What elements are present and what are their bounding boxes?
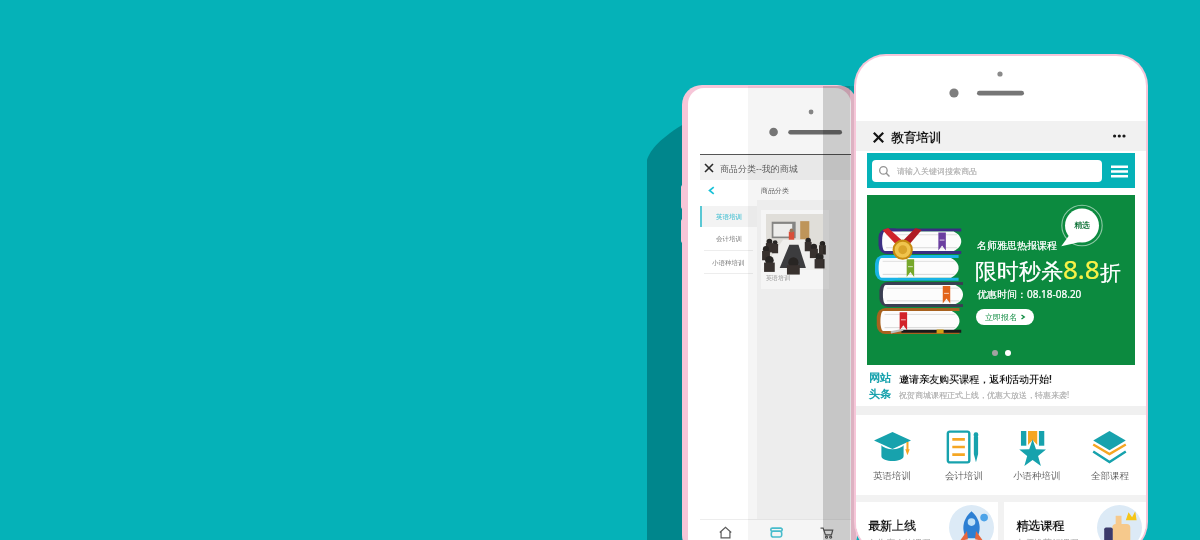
staticText: 名师推荐好课程 xyxy=(1016,537,1079,540)
staticText: 头条 xyxy=(869,387,891,401)
button[interactable]: 会计培训 xyxy=(928,415,1000,495)
staticText: 小语种培训 xyxy=(1013,470,1061,482)
staticText: 邀请亲友购买课程，返利活动开始! xyxy=(899,372,1052,386)
button[interactable]: 英语培训 xyxy=(700,206,757,227)
staticText: 英语培训 xyxy=(873,470,911,482)
staticText: 全部课程 xyxy=(1091,470,1129,482)
button[interactable]: 商品分类--我的商城 xyxy=(705,155,851,180)
button[interactable]: 网站 xyxy=(869,365,1146,406)
button[interactable]: 最新上线 xyxy=(868,502,998,540)
staticText: 名师雅思热报课程 xyxy=(977,239,1057,252)
staticText: 最新上线 xyxy=(868,518,916,533)
staticText: 8.8 xyxy=(1063,251,1100,286)
staticText: 精选 xyxy=(1074,220,1090,230)
staticText: 限时秒杀 xyxy=(975,258,1063,286)
button[interactable]: 购物车 xyxy=(801,520,851,540)
button[interactable]: 英语培训 xyxy=(856,415,928,495)
staticText: 有你喜欢的课程 xyxy=(868,537,931,540)
button[interactable]: 精选课程 xyxy=(1016,502,1146,540)
staticText: 小语种培训 xyxy=(712,259,745,267)
button[interactable]: 首页 xyxy=(700,520,751,540)
button[interactable]: Menu xyxy=(1110,161,1128,181)
staticText: 优惠时间：08.18-08.20 xyxy=(977,287,1082,301)
staticText: 会计培训 xyxy=(945,470,983,482)
button[interactable]: 请输入关键词搜索商品 xyxy=(879,160,1102,182)
staticText: 折 xyxy=(1100,260,1121,286)
staticText: 英语培训 xyxy=(766,274,790,282)
staticText: 商品分类--我的商城 xyxy=(720,162,798,174)
button[interactable]: 会计培训 xyxy=(700,227,757,251)
button[interactable]: 小语种培训 xyxy=(700,251,757,274)
button[interactable]: Close xyxy=(873,132,884,143)
staticText: 立即报名 xyxy=(985,312,1017,322)
staticText: 祝贺商城课程正式上线，优惠大放送，特惠来袭! xyxy=(899,389,1070,400)
button[interactable]: 英语培训 xyxy=(761,210,829,289)
button[interactable]: More options xyxy=(1110,128,1130,144)
staticText: 网站 xyxy=(869,371,891,385)
staticText: 商品分类 xyxy=(761,186,789,195)
button[interactable]: 小语种培训 xyxy=(1000,415,1073,495)
staticText: 精选课程 xyxy=(1016,518,1064,533)
button[interactable]: 商城 xyxy=(751,520,801,540)
staticText: 英语培训 xyxy=(716,213,742,221)
button[interactable]: Back xyxy=(707,186,716,195)
button[interactable]: 立即报名 xyxy=(976,309,1034,325)
staticText: 请输入关键词搜索商品 xyxy=(897,166,977,176)
staticText: 教育培训 xyxy=(891,130,941,146)
button[interactable]: 全部课程 xyxy=(1073,415,1146,495)
staticText: 会计培训 xyxy=(716,235,742,243)
